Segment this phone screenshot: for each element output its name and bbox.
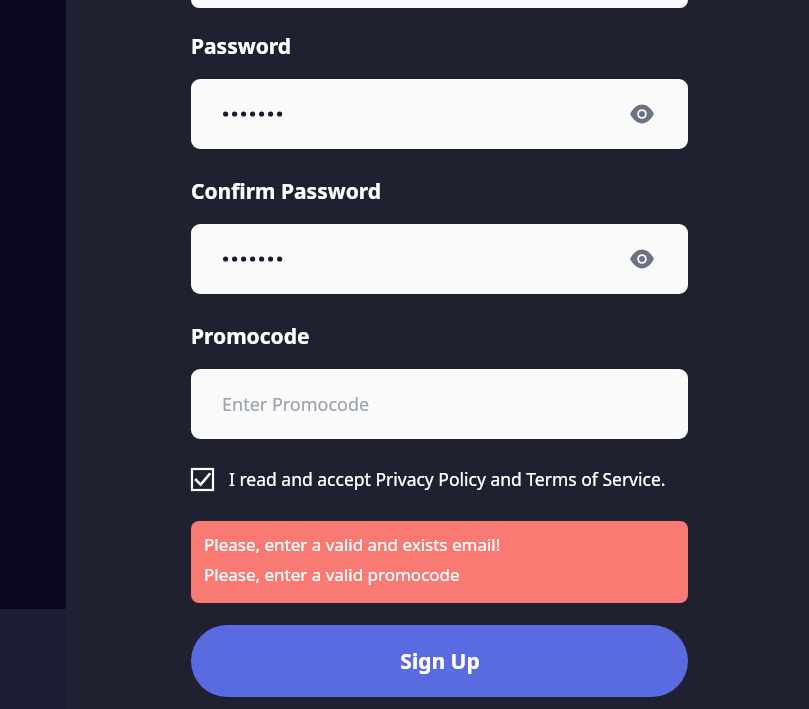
staticText: Confirm Password — [191, 177, 382, 206]
staticText: Please, enter a valid promocode — [204, 563, 460, 586]
staticText: Promocode — [191, 322, 310, 351]
staticText: Please, enter a valid and exists email! — [204, 533, 501, 556]
button[interactable]: Sign Up — [191, 625, 688, 697]
button[interactable]: Show password — [626, 98, 658, 130]
staticText: Password — [191, 32, 292, 61]
button[interactable] — [191, 0, 688, 8]
button[interactable]: I read and accept Privacy Policy and Ter… — [191, 463, 688, 495]
staticText: Enter Promocode — [222, 392, 370, 417]
button[interactable]: Enter Promocode — [191, 369, 688, 439]
button[interactable]: Show password — [191, 79, 688, 149]
button[interactable]: Show password — [191, 224, 688, 294]
staticText: I read and accept Privacy Policy and Ter… — [229, 467, 666, 491]
button[interactable]: Show password — [626, 243, 658, 275]
staticText: Sign Up — [400, 647, 480, 676]
